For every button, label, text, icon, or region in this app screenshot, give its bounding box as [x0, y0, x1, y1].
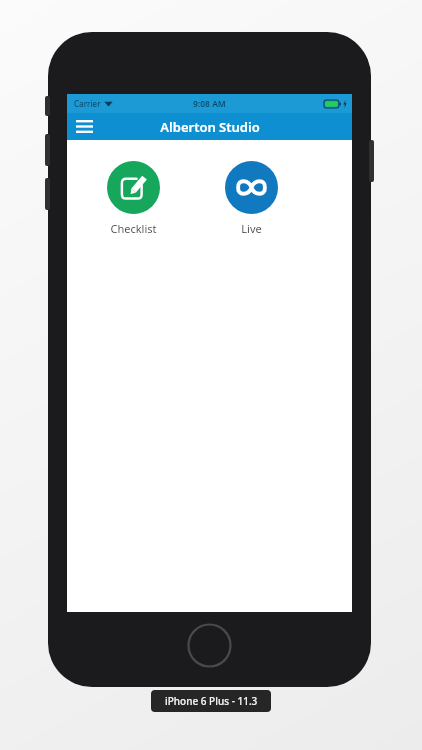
button[interactable]: Checklist: [90, 161, 176, 236]
staticText: iPhone 6 Plus - 11.3: [165, 694, 258, 708]
staticText: Live: [241, 221, 262, 236]
button[interactable]: Menu: [67, 113, 101, 140]
button[interactable]: Live: [208, 161, 294, 236]
staticText: 9:08 AM: [193, 98, 226, 110]
button[interactable]: Home: [187, 623, 232, 668]
staticText: Carrier: [74, 98, 101, 109]
staticText: Checklist: [110, 221, 157, 236]
staticText: Alberton Studio: [160, 118, 260, 136]
